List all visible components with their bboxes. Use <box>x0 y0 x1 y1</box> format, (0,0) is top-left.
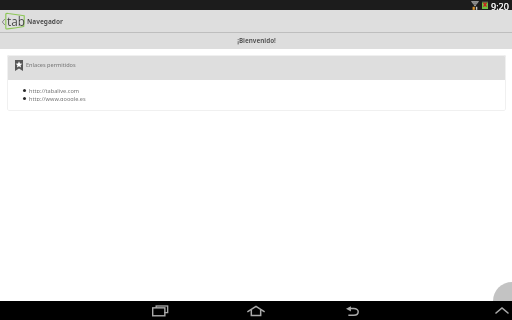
button[interactable]: Recents <box>144 301 176 320</box>
staticText: Navegador <box>27 17 63 26</box>
button[interactable]: Enlaces permitidos <box>7 55 506 80</box>
staticText: Enlaces permitidos <box>26 61 76 69</box>
staticText: http://tabalive.com <box>29 87 80 93</box>
button[interactable]: http://www.google.es <box>7 95 506 101</box>
button[interactable]: Home <box>240 301 272 320</box>
staticText: 9:20 <box>491 0 509 10</box>
staticText: tab <box>7 13 25 29</box>
button[interactable]: Expand <box>493 301 511 320</box>
button[interactable]: http://tabalive.com <box>7 87 506 93</box>
button[interactable]: Back <box>0 10 6 33</box>
staticText: http://www.google.es <box>29 95 86 101</box>
button[interactable]: tab home <box>6 10 25 33</box>
staticText: ¡Bienvenido! <box>237 36 276 45</box>
button[interactable]: Back <box>336 301 368 320</box>
button[interactable]: Scroll to top <box>493 282 512 320</box>
